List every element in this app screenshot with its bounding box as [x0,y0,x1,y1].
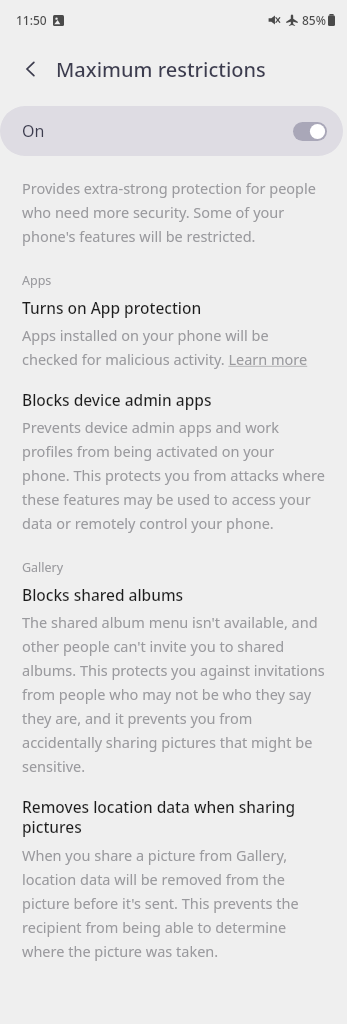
staticText: Maximum restrictions [56,56,266,83]
staticText: Blocks shared albums [22,584,184,605]
staticText: Gallery [22,559,64,576]
button[interactable]: On [0,106,343,156]
staticText: Turns on App protection [22,297,202,318]
staticText: Prevents device admin apps and work prof… [22,417,325,533]
staticText: When you share a picture from Gallery, l… [22,845,325,961]
staticText: On [22,120,45,142]
staticText: Apps [22,272,52,289]
staticText: 11:50 [16,12,47,28]
staticText: Apps installed on your phone will be che… [22,325,325,369]
staticText: The shared album menu isn't available, a… [22,612,325,776]
staticText: Provides extra-strong protection for peo… [22,178,325,246]
staticText: 85% [302,12,326,28]
staticText: Blocks device admin apps [22,389,212,410]
staticText: Removes location data when sharing pictu… [22,796,325,838]
button[interactable]: Back [14,52,48,86]
